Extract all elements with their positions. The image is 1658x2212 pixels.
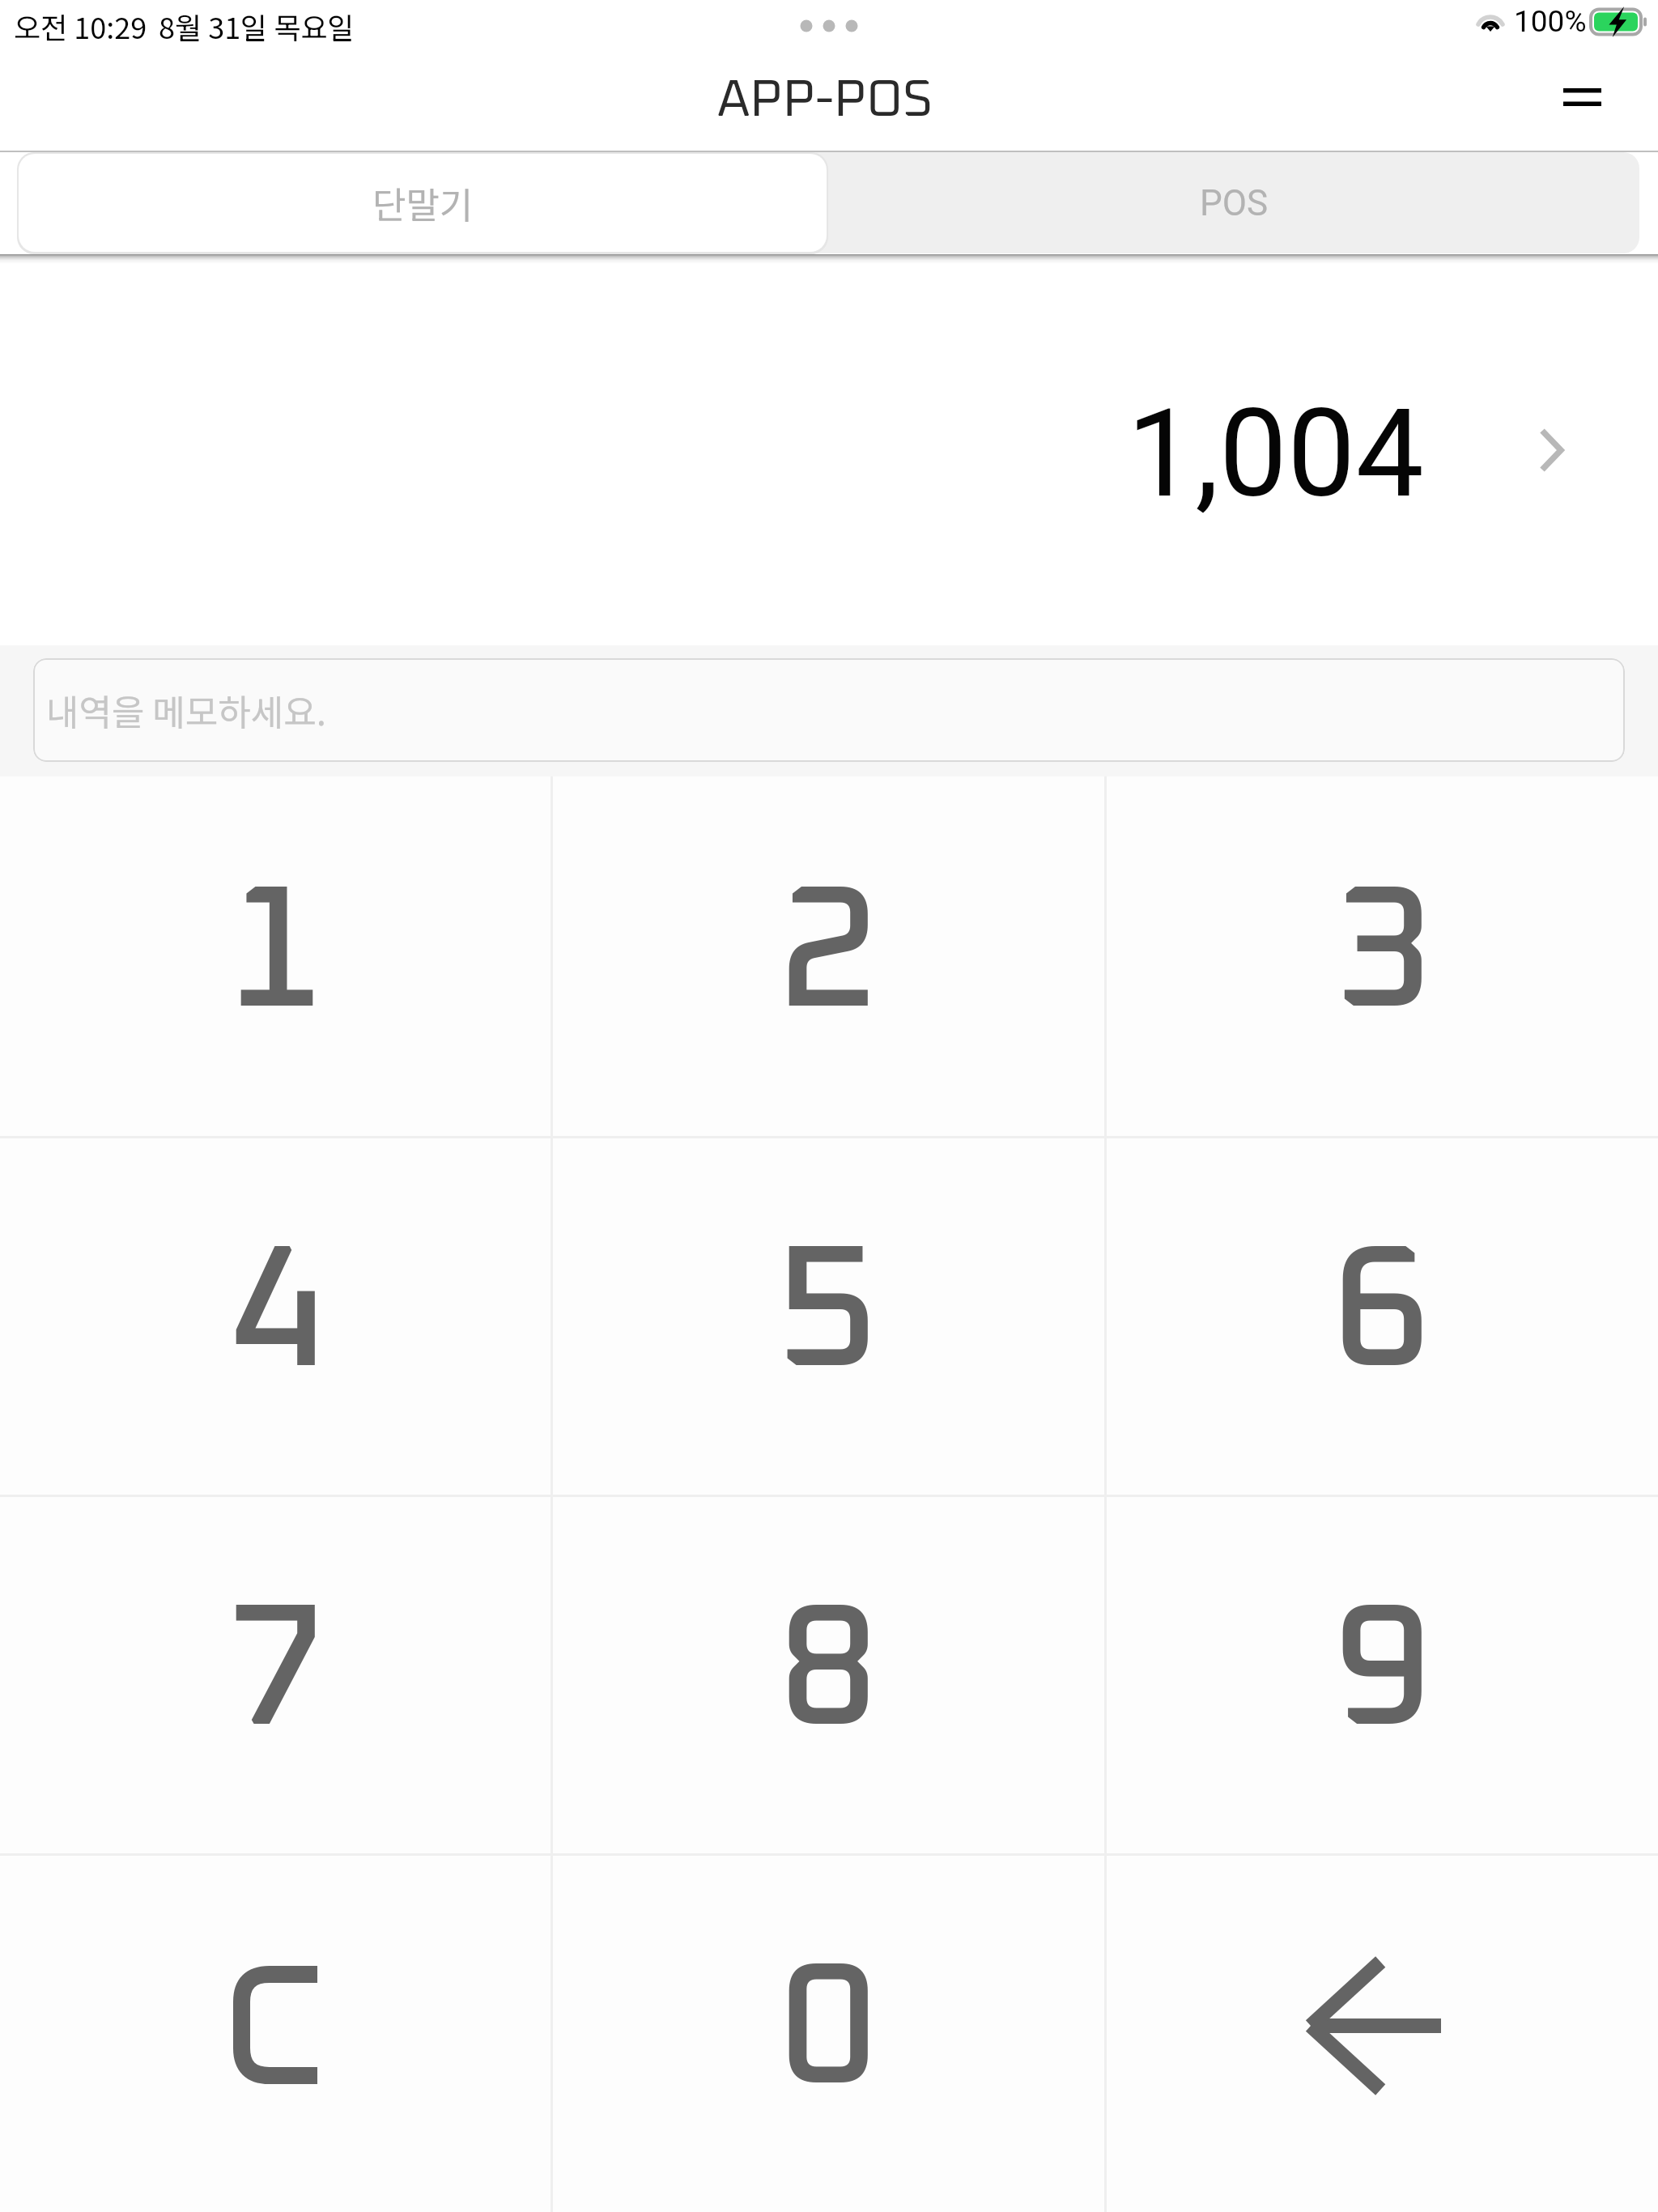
button[interactable]: 0 [553,1853,1104,2212]
button[interactable]: Backspace [1107,1853,1658,2212]
button[interactable]: POS [829,152,1639,253]
staticText: 8월 31일 목요일 [159,5,355,47]
staticText: 내역을 메모하세요. [46,684,326,736]
button[interactable]: 7 [0,1495,551,1853]
staticText: 100% [1514,4,1587,39]
staticText: 3 [1333,870,1432,1042]
button[interactable]: 9 [1107,1495,1658,1853]
staticText: 8 [779,1589,878,1760]
staticText: 1 [226,870,325,1042]
button[interactable]: 6 [1107,1136,1658,1495]
staticText: 7 [226,1589,325,1760]
button[interactable]: 1,004 [0,254,1658,645]
staticText: 2 [779,870,878,1042]
staticText: APP-POS [717,74,933,126]
staticText: 4 [226,1230,325,1402]
button[interactable]: 4 [0,1136,551,1495]
staticText: 6 [1333,1230,1432,1402]
button[interactable]: 5 [553,1136,1104,1495]
staticText: 오전 10:29 [14,5,147,47]
staticText: 1,004 [1127,383,1424,525]
button[interactable]: 2 [553,776,1104,1136]
button[interactable]: 1 [0,776,551,1136]
staticText: 0 [779,1947,878,2119]
staticText: POS [1200,182,1269,224]
button[interactable]: Clear [0,1853,551,2212]
button[interactable]: Menu [1534,61,1630,134]
button[interactable]: 8 [553,1495,1104,1853]
staticText: 9 [1333,1589,1432,1760]
staticText: 5 [779,1230,878,1402]
button[interactable]: 단말기 [19,154,827,252]
button[interactable]: 3 [1107,776,1658,1136]
staticText: 단말기 [372,177,474,229]
button[interactable]: 내역을 메모하세요. [33,658,1625,762]
